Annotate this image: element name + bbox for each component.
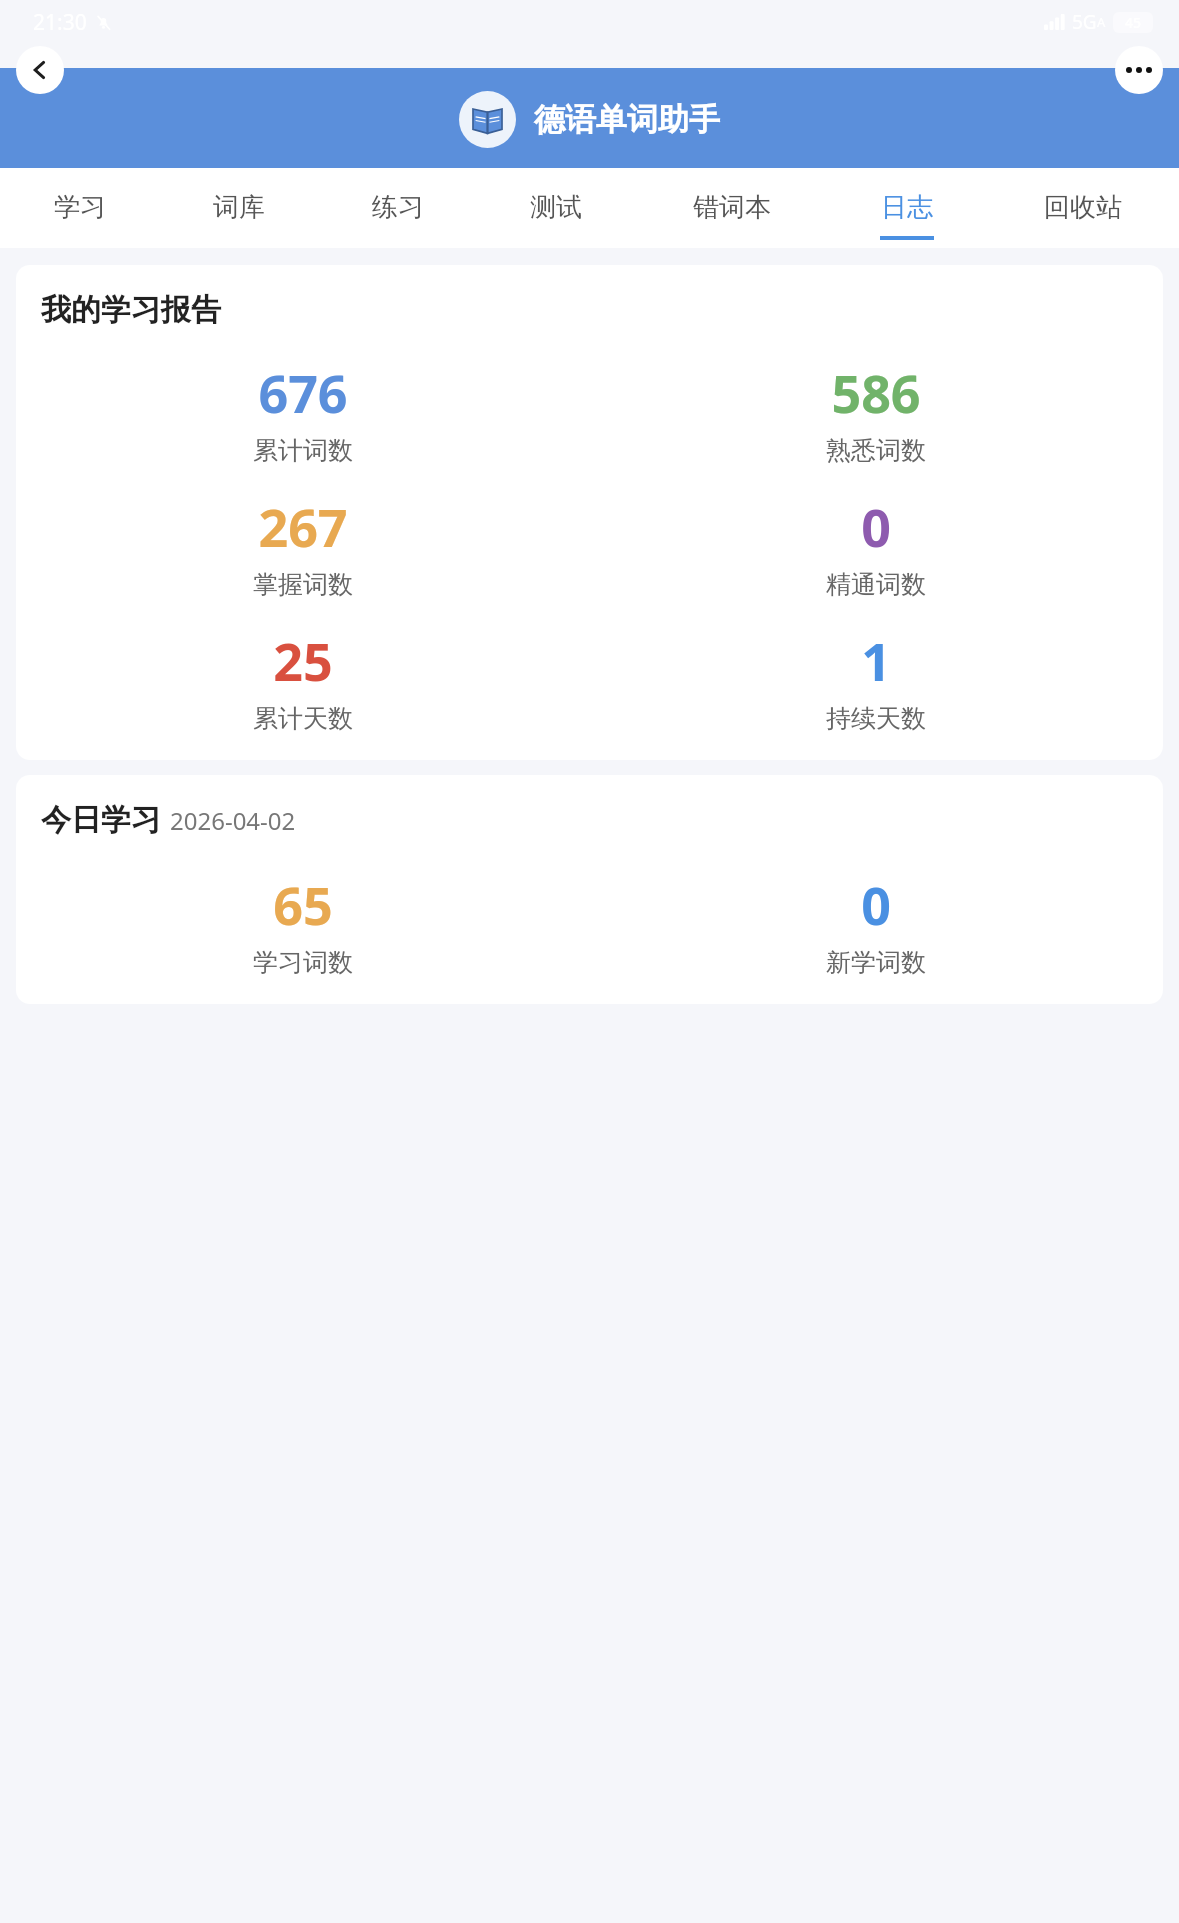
button[interactable]: 267 <box>16 491 589 600</box>
button[interactable]: 测试 <box>477 168 635 248</box>
staticText: 词库 <box>213 191 265 224</box>
staticText: 0 <box>861 491 891 562</box>
staticText: 1 <box>861 625 891 696</box>
button[interactable]: 错词本 <box>635 168 828 248</box>
button[interactable]: More options <box>1115 46 1163 94</box>
staticText: A <box>1097 13 1106 31</box>
staticText: 5G <box>1072 9 1097 35</box>
button[interactable]: 回收站 <box>986 168 1179 248</box>
button[interactable]: 词库 <box>159 168 318 248</box>
button[interactable]: 练习 <box>318 168 477 248</box>
staticText: 测试 <box>530 191 582 224</box>
staticText: 熟悉词数 <box>826 435 926 466</box>
staticText: 学习词数 <box>253 947 353 978</box>
staticText: 65 <box>273 869 333 940</box>
staticText: 日志 <box>881 191 933 224</box>
staticText: 586 <box>831 357 921 428</box>
staticText: 掌握词数 <box>253 569 353 600</box>
staticText: 0 <box>861 869 891 940</box>
button[interactable]: 1 <box>589 625 1163 734</box>
staticText: 新学词数 <box>826 947 926 978</box>
staticText: 练习 <box>372 191 424 224</box>
button[interactable]: 日志 <box>828 168 986 248</box>
button[interactable]: 676 <box>16 357 589 466</box>
button[interactable]: 25 <box>16 625 589 734</box>
staticText: 累计词数 <box>253 435 353 466</box>
staticText: 回收站 <box>1044 191 1122 224</box>
staticText: 精通词数 <box>826 569 926 600</box>
button[interactable]: 0 <box>589 491 1163 600</box>
button[interactable]: 0 <box>589 869 1163 978</box>
button[interactable]: 586 <box>589 357 1163 466</box>
staticText: 错词本 <box>693 191 771 224</box>
staticText: 676 <box>258 357 348 428</box>
staticText: 267 <box>258 491 348 562</box>
staticText: 2026-04-02 <box>170 804 296 837</box>
button[interactable]: 65 <box>16 869 589 978</box>
staticText: 今日学习 <box>41 801 161 839</box>
staticText: 持续天数 <box>826 703 926 734</box>
button[interactable]: 学习 <box>0 168 159 248</box>
staticText: 学习 <box>54 191 106 224</box>
staticText: 德语单词助手 <box>534 100 720 139</box>
staticText: 21:30 <box>33 8 87 37</box>
button[interactable]: Back <box>16 46 64 94</box>
staticText: 累计天数 <box>253 703 353 734</box>
staticText: 25 <box>273 625 333 696</box>
staticText: 我的学习报告 <box>41 291 221 329</box>
